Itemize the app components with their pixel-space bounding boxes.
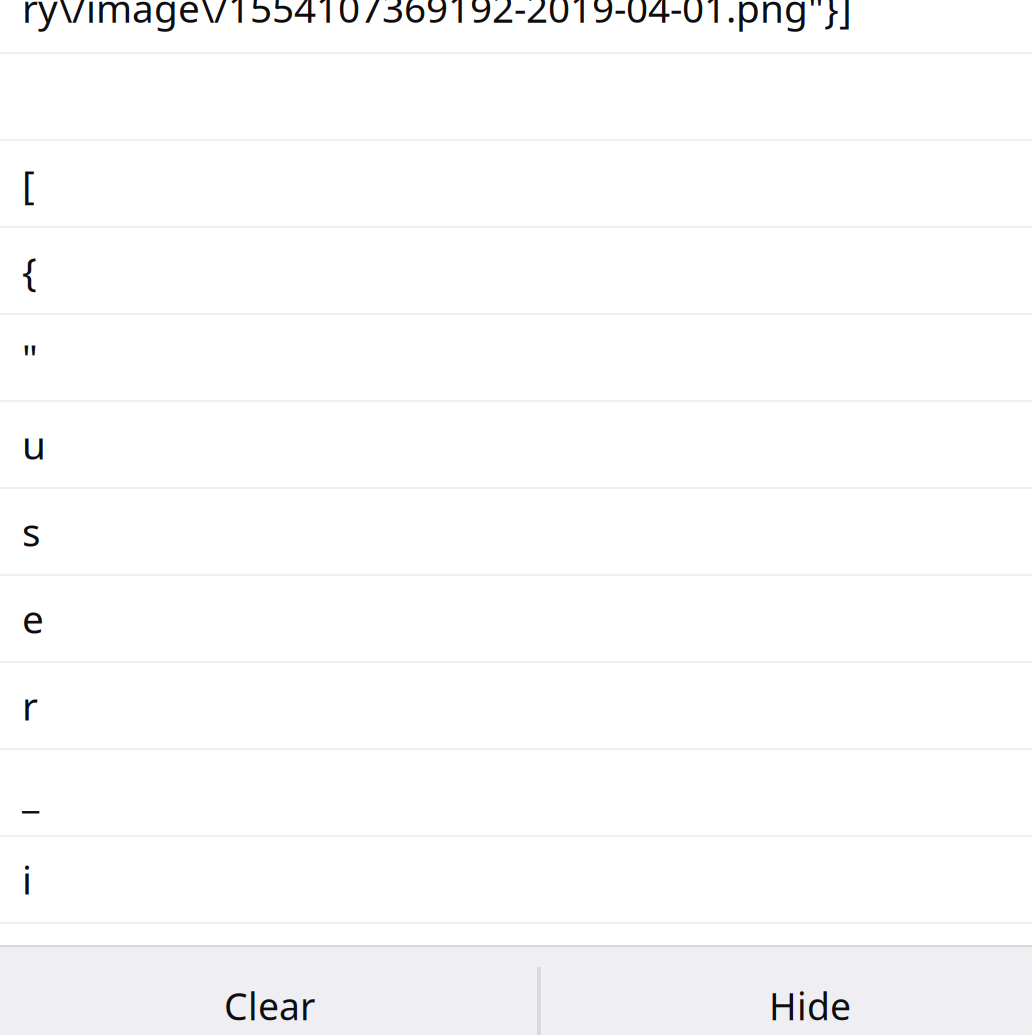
button[interactable]: r (0, 663, 1032, 750)
staticText: u (22, 419, 46, 470)
staticText: r (22, 680, 38, 731)
staticText: " (22, 332, 38, 383)
button[interactable]: Clear (0, 947, 539, 1035)
staticText: i (22, 854, 32, 905)
staticText: [ (22, 158, 35, 209)
button[interactable]: [ (0, 141, 1032, 228)
staticText: s (22, 506, 41, 557)
button[interactable]: _ (0, 750, 1032, 837)
button[interactable]: " (0, 315, 1032, 402)
staticText: e (22, 593, 44, 644)
button[interactable]: u (0, 402, 1032, 489)
button[interactable]: Hide (539, 947, 1032, 1035)
button[interactable]: s (0, 489, 1032, 576)
button[interactable]: e (0, 576, 1032, 663)
button[interactable]: i (0, 837, 1032, 924)
staticText: ry\/image\/1554107369192-2019-04-01.png"… (22, 0, 852, 33)
button[interactable]: { (0, 228, 1032, 315)
staticText: { (22, 245, 37, 296)
staticText: Hide (769, 981, 851, 1031)
staticText: Clear (224, 981, 315, 1031)
staticText: _ (22, 767, 39, 818)
